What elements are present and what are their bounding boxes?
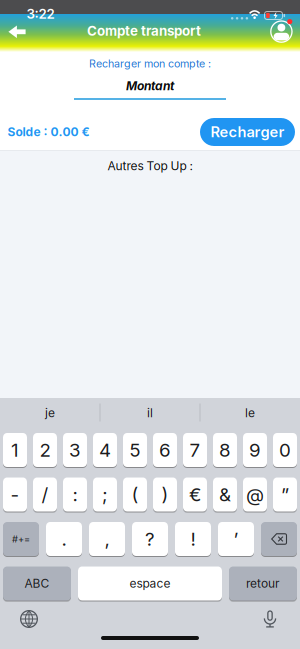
button[interactable]: ’ — [218, 522, 254, 556]
button[interactable]: & — [213, 477, 237, 511]
button[interactable]: ” — [273, 477, 297, 511]
button[interactable]: 4 — [93, 433, 117, 467]
staticText: - — [10, 483, 19, 505]
staticText: 2 — [39, 439, 50, 461]
staticText: 6 — [159, 439, 171, 461]
button[interactable]: 5 — [123, 433, 147, 467]
staticText: ( — [131, 483, 138, 505]
button[interactable]: @ — [243, 477, 267, 511]
staticText: 3 — [69, 439, 81, 461]
button[interactable]: . — [46, 522, 82, 556]
button[interactable]: 7 — [183, 433, 207, 467]
button[interactable]: 8 — [213, 433, 237, 467]
button[interactable]: Next keyboard — [20, 610, 38, 628]
button[interactable]: ! — [175, 522, 211, 556]
staticText: € — [189, 483, 201, 505]
staticText: Compte transport — [87, 23, 201, 39]
button[interactable]: Delete — [261, 522, 297, 556]
staticText: ! — [190, 528, 195, 550]
button[interactable]: : — [63, 477, 87, 511]
staticText: . — [61, 528, 66, 550]
staticText: / — [41, 483, 48, 505]
button[interactable]: Back — [3, 21, 31, 43]
staticText: & — [219, 483, 231, 505]
button[interactable]: 6 — [153, 433, 177, 467]
button[interactable]: ? — [132, 522, 168, 556]
button[interactable]: Recharger — [200, 118, 295, 146]
staticText: je — [45, 406, 55, 420]
button[interactable]: € — [183, 477, 207, 511]
button[interactable]: 9 — [243, 433, 267, 467]
staticText: 4 — [99, 439, 111, 461]
staticText: ABC — [24, 576, 49, 591]
button[interactable]: - — [3, 477, 27, 511]
staticText: Recharger — [210, 123, 284, 141]
button[interactable]: ( — [123, 477, 147, 511]
staticText: 8 — [219, 439, 231, 461]
staticText: retour — [246, 576, 280, 591]
staticText: Autres Top Up : — [107, 159, 192, 173]
staticText: il — [147, 406, 153, 420]
button[interactable]: 0 — [273, 433, 297, 467]
button[interactable]: il — [102, 399, 198, 427]
staticText: #+= — [12, 533, 30, 544]
button[interactable]: Dictation — [261, 610, 279, 628]
staticText: ) — [161, 483, 168, 505]
staticText: ” — [281, 483, 289, 505]
button[interactable]: 2 — [33, 433, 57, 467]
button[interactable]: espace — [78, 566, 222, 600]
staticText: 5 — [129, 439, 140, 461]
staticText: 0 — [279, 439, 291, 461]
button[interactable]: ABC — [3, 566, 71, 600]
button[interactable]: le — [202, 399, 298, 427]
staticText: 9 — [249, 439, 261, 461]
button[interactable]: Profile — [270, 19, 293, 44]
staticText: Montant — [126, 79, 174, 93]
button[interactable]: ) — [153, 477, 177, 511]
button[interactable]: , — [89, 522, 125, 556]
button[interactable]: ; — [93, 477, 117, 511]
staticText: 7 — [189, 439, 200, 461]
staticText: ? — [145, 528, 155, 550]
staticText: ; — [102, 483, 108, 505]
button[interactable]: je — [2, 399, 98, 427]
staticText: 1 — [11, 439, 19, 461]
staticText: Solde : 0.00 € — [7, 125, 89, 139]
staticText: @ — [246, 483, 264, 505]
staticText: 3:22 — [26, 6, 54, 22]
staticText: espace — [129, 576, 170, 591]
button[interactable]: Montant — [74, 73, 226, 99]
staticText: , — [104, 528, 109, 550]
button[interactable]: / — [33, 477, 57, 511]
button[interactable]: 1 — [3, 433, 27, 467]
button[interactable]: retour — [229, 566, 297, 600]
staticText: ’ — [233, 528, 238, 550]
button[interactable]: 3 — [63, 433, 87, 467]
staticText: Recharger mon compte : — [89, 57, 211, 70]
staticText: : — [72, 483, 77, 505]
button[interactable]: #+= — [3, 522, 39, 556]
staticText: le — [245, 406, 255, 420]
